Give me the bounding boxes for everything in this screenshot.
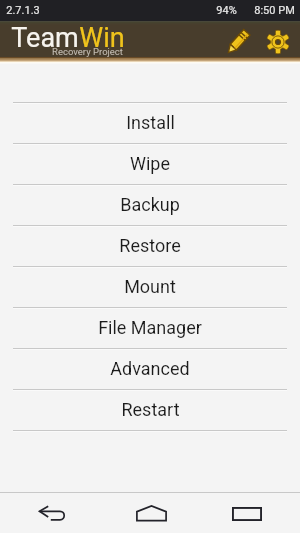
button[interactable]: Advanced xyxy=(0,348,300,389)
staticText: Win xyxy=(79,22,125,54)
staticText: Mount xyxy=(124,276,176,297)
staticText: Team xyxy=(11,22,79,54)
button[interactable]: Recent apps xyxy=(200,492,300,533)
button[interactable]: Backup xyxy=(0,184,300,225)
staticText: Install xyxy=(126,112,175,133)
staticText: Backup xyxy=(120,194,180,215)
staticText: Restart xyxy=(121,399,180,420)
staticText: Advanced xyxy=(110,358,190,379)
button[interactable]: Home xyxy=(100,492,200,533)
staticText: 94% xyxy=(216,4,237,17)
button[interactable]: File Manager xyxy=(0,307,300,348)
button[interactable]: Mount xyxy=(0,266,300,307)
button[interactable]: Wipe xyxy=(0,143,300,184)
staticText: 8:50 PM xyxy=(254,4,295,17)
staticText: Restore xyxy=(119,235,181,256)
staticText: File Manager xyxy=(98,317,202,338)
staticText: 2.7.1.3 xyxy=(6,4,40,17)
button[interactable]: Settings xyxy=(262,26,294,58)
button[interactable]: Back xyxy=(0,492,100,533)
button[interactable]: Restore xyxy=(0,225,300,266)
button[interactable]: Restart xyxy=(0,389,300,430)
button[interactable]: Edit xyxy=(222,26,254,58)
staticText: Wipe xyxy=(130,153,170,174)
staticText: Recovery Project xyxy=(52,46,123,57)
button[interactable]: Install xyxy=(0,102,300,143)
